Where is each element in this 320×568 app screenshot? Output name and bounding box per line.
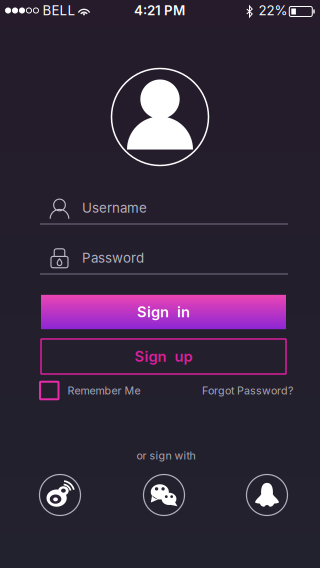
staticText: Remember Me xyxy=(67,384,140,397)
button[interactable]: Sign in xyxy=(41,295,286,329)
staticText: Sign up xyxy=(134,348,192,365)
button[interactable]: Sign in with Weibo xyxy=(39,474,80,515)
staticText: or sign with xyxy=(136,449,195,462)
staticText: Sign in xyxy=(137,303,190,321)
button[interactable]: Sign in with WeChat xyxy=(143,474,184,515)
staticText: Password xyxy=(82,250,144,266)
staticText: Username xyxy=(82,200,147,216)
button[interactable]: Sign up xyxy=(41,339,286,374)
button[interactable]: Profile photo xyxy=(111,68,208,165)
staticText: BELL xyxy=(42,2,75,18)
button[interactable]: Remember Me xyxy=(40,379,150,401)
staticText: Forgot Password? xyxy=(202,384,293,397)
button[interactable]: Password xyxy=(40,245,288,271)
button[interactable]: Forgot Password? xyxy=(183,379,293,401)
button[interactable]: Username xyxy=(40,195,288,221)
staticText: 4:21 PM xyxy=(134,2,185,18)
staticText: 22% xyxy=(258,2,287,18)
button[interactable]: Sign in with QQ xyxy=(246,474,287,515)
